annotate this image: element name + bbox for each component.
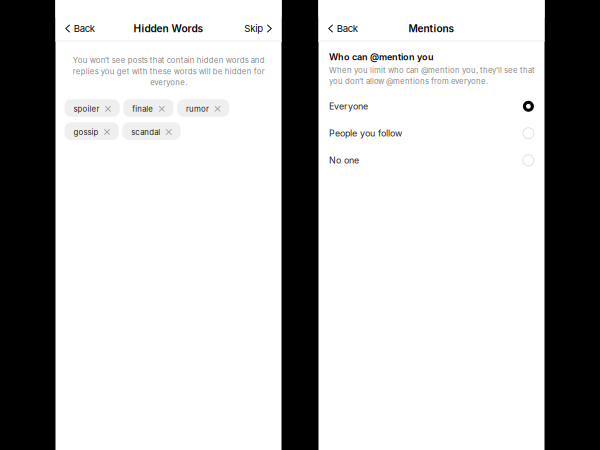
button[interactable]: Skip: [234, 17, 281, 39]
button[interactable]: No one: [318, 147, 544, 174]
staticText: People you follow: [329, 128, 402, 139]
staticText: Back: [74, 23, 95, 34]
staticText: You won’t see posts that contain hidden …: [72, 55, 264, 87]
staticText: spoiler: [73, 104, 99, 114]
staticText: finale: [132, 104, 153, 114]
staticText: Mentions: [408, 22, 454, 35]
button[interactable]: spoiler: [64, 99, 120, 117]
staticText: When you limit who can @mention you, the…: [329, 65, 535, 86]
staticText: No one: [329, 155, 359, 166]
staticText: Skip: [244, 23, 263, 34]
staticText: Back: [337, 23, 358, 34]
button[interactable]: Back: [55, 17, 105, 39]
button[interactable]: People you follow: [318, 120, 544, 147]
staticText: gossip: [73, 127, 98, 137]
button[interactable]: gossip: [64, 122, 119, 140]
button[interactable]: scandal: [122, 122, 180, 140]
button[interactable]: rumor: [177, 99, 229, 117]
button[interactable]: finale: [123, 99, 173, 117]
staticText: Who can @mention you: [329, 51, 434, 62]
staticText: Everyone: [329, 101, 368, 112]
staticText: Hidden Words: [133, 22, 203, 35]
staticText: scandal: [131, 127, 160, 137]
button[interactable]: Everyone: [318, 93, 544, 120]
button[interactable]: Back: [318, 17, 368, 39]
staticText: rumor: [186, 104, 209, 114]
